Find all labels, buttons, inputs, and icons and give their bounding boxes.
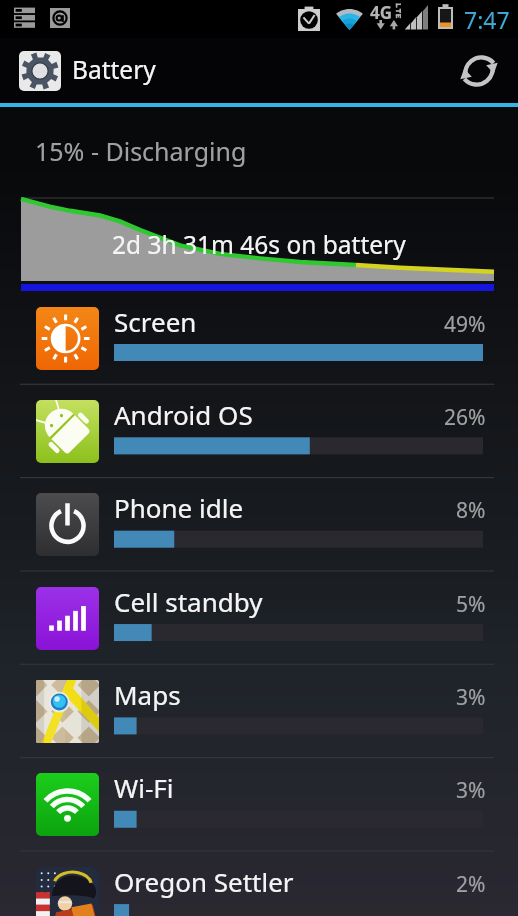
staticText: Maps [114,677,181,712]
staticText: 5% [456,590,486,619]
staticText: 7:47 [464,4,510,35]
staticText: Android OS [114,397,253,432]
staticText: 49% [444,310,486,339]
button[interactable]: Refresh [450,42,508,100]
staticText: Cell standby [114,584,263,619]
button[interactable]: Phone idle [0,478,518,571]
button[interactable]: Battery [19,38,156,103]
staticText: Battery [72,53,156,86]
staticText: 3% [456,776,486,805]
staticText: 3% [456,683,486,712]
button[interactable]: Maps [0,665,518,758]
staticText: 2d 3h 31m 46s on battery [112,228,406,261]
staticText: Phone idle [114,490,244,525]
staticText: 26% [444,403,486,432]
button[interactable]: Screen [0,292,518,385]
staticText: Oregon Settler [114,864,294,899]
staticText: Screen [114,304,197,339]
button[interactable]: Oregon Settler [0,852,518,916]
staticText: Wi-Fi [114,770,174,805]
staticText: 4G [370,1,393,24]
staticText: 8% [456,496,486,525]
button[interactable]: Cell standby [0,572,518,665]
button[interactable]: Wi-Fi [0,758,518,851]
button[interactable]: Android OS [0,385,518,478]
staticText: 15% - Discharging [35,134,247,168]
staticText: 2% [456,870,486,899]
